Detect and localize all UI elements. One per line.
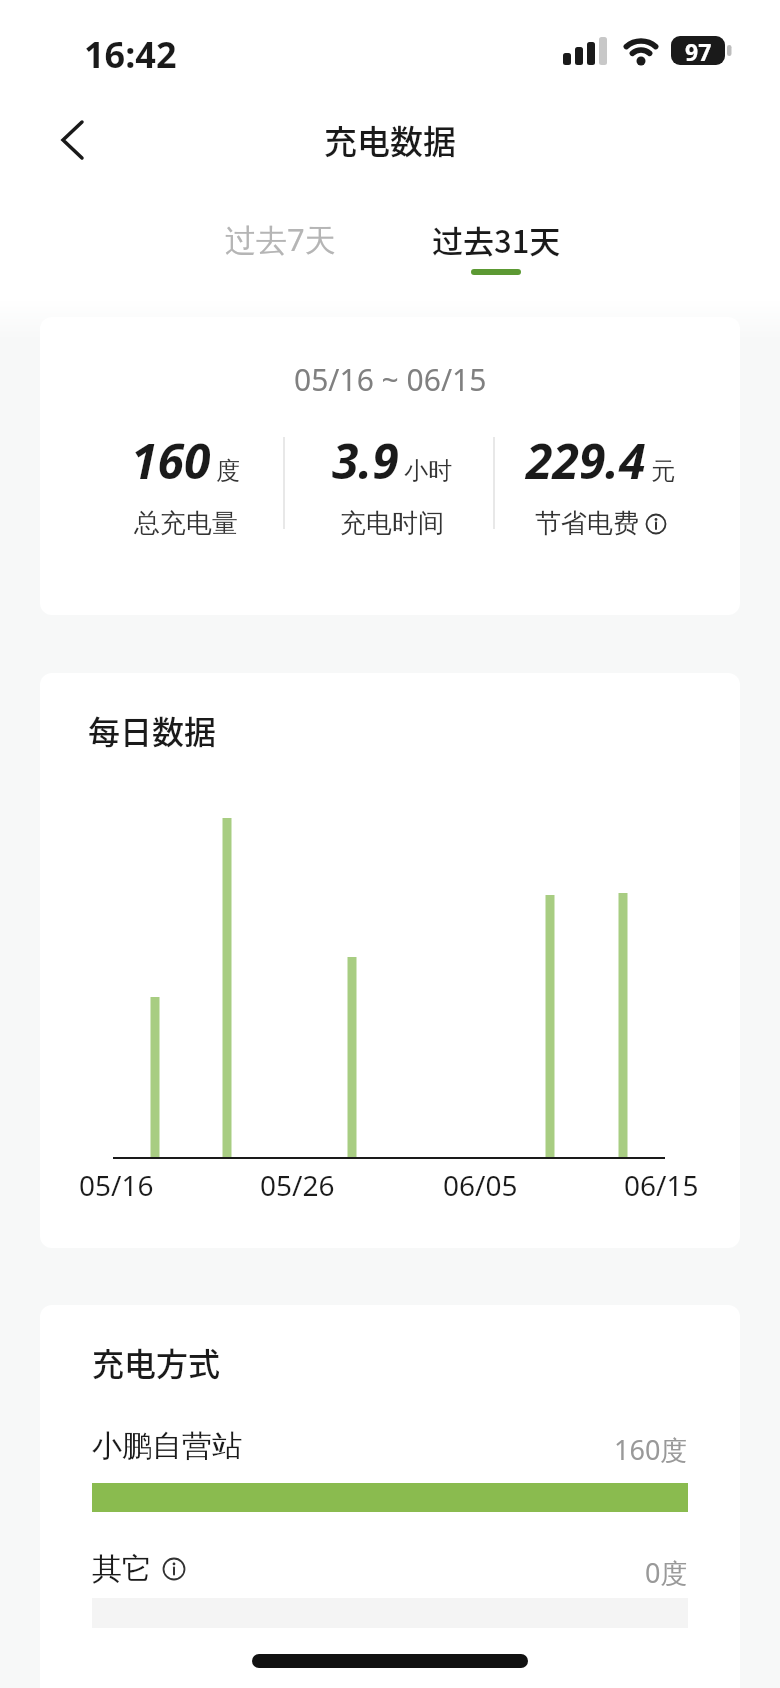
staticText: 05/16 ~ 06/15 (294, 359, 487, 399)
staticText: 节省电费 (535, 507, 639, 540)
staticText: 06/15 (624, 1166, 699, 1204)
staticText: 元 (651, 456, 675, 486)
staticText: 每日数据 (88, 707, 217, 753)
staticText: 05/16 (79, 1166, 154, 1204)
staticText: 过去7天 (225, 218, 336, 260)
button[interactable]: 过去31天 (406, 210, 586, 268)
staticText: 小鹏自营站 (92, 1427, 242, 1465)
staticText: 小时 (404, 456, 452, 486)
staticText: 度 (216, 456, 240, 486)
staticText: 97 (685, 36, 712, 65)
button[interactable] (48, 112, 104, 168)
staticText: 充电时间 (340, 507, 444, 540)
staticText: 0度 (645, 1554, 688, 1591)
staticText: 06/05 (443, 1166, 518, 1204)
button[interactable]: 过去7天 (190, 210, 370, 268)
staticText: 05/26 (260, 1166, 335, 1204)
staticText: 其它 (92, 1550, 152, 1588)
staticText: 16:42 (84, 30, 177, 79)
staticText: 总充电量 (134, 507, 238, 540)
staticText: 充电方式 (92, 1339, 221, 1385)
staticText: 160度 (614, 1431, 688, 1468)
staticText: 过去31天 (432, 217, 561, 262)
staticText: 充电数据 (324, 116, 456, 164)
staticText: 160 (131, 428, 211, 493)
staticText: 229.4 (526, 428, 646, 493)
staticText: 3.9 (332, 428, 399, 493)
